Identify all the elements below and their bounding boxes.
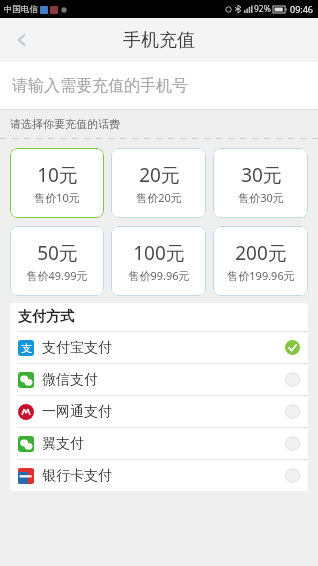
- button[interactable]: 20元: [111, 148, 206, 218]
- button[interactable]: 请输入需要充值的手机号: [0, 62, 318, 109]
- staticText: 翼支付: [42, 435, 84, 453]
- staticText: 售价10元: [34, 190, 80, 205]
- button[interactable]: 200元: [213, 226, 308, 296]
- button[interactable]: 10元: [10, 148, 104, 218]
- staticText: 银行卡支付: [42, 467, 112, 485]
- staticText: 支付宝支付: [42, 339, 112, 357]
- staticText: 手机充值: [123, 29, 195, 52]
- staticText: 请选择你要充值的话费: [10, 117, 120, 131]
- staticText: 售价30元: [238, 190, 284, 205]
- button[interactable]: 50元: [10, 226, 104, 296]
- staticText: 20元: [139, 162, 180, 188]
- button[interactable]: 支: [10, 332, 308, 363]
- staticText: 100元: [133, 240, 185, 266]
- button[interactable]: 微信支付: [10, 364, 308, 395]
- staticText: 支: [21, 341, 32, 355]
- staticText: 92%: [254, 3, 271, 15]
- staticText: 30元: [241, 162, 282, 188]
- button[interactable]: Back: [0, 18, 44, 62]
- staticText: 售价49.99元: [26, 268, 88, 283]
- button[interactable]: 翼支付: [10, 428, 308, 459]
- staticText: 200元: [235, 240, 287, 266]
- staticText: 微信支付: [42, 371, 98, 389]
- staticText: 09:46: [290, 3, 314, 15]
- button[interactable]: 一网通支付: [10, 396, 308, 427]
- staticText: 50元: [37, 240, 78, 266]
- staticText: 一网通支付: [42, 403, 112, 421]
- staticText: 售价20元: [136, 190, 182, 205]
- staticText: 售价199.96元: [227, 268, 295, 283]
- staticText: 售价99.96元: [128, 268, 190, 283]
- staticText: 10元: [37, 162, 78, 188]
- staticText: 请输入需要充值的手机号: [12, 76, 188, 96]
- button[interactable]: 银行卡支付: [10, 460, 308, 491]
- button[interactable]: 100元: [111, 226, 206, 296]
- staticText: 中国电信: [4, 4, 38, 15]
- button[interactable]: 30元: [213, 148, 308, 218]
- staticText: 支付方式: [18, 308, 74, 326]
